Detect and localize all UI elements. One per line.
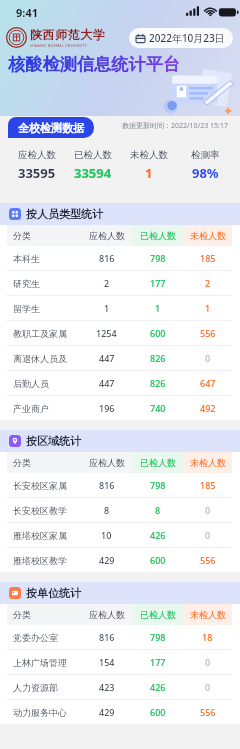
- staticText: 应检人数: [18, 149, 56, 161]
- button[interactable]: 本科生: [0, 246, 240, 270]
- staticText: 分类: [13, 230, 31, 241]
- staticText: 离退休人员及家属: [13, 353, 75, 364]
- staticText: 1: [104, 302, 110, 314]
- button[interactable]: 党委办公室: [0, 625, 240, 649]
- button[interactable]: 2022年10月23日: [129, 28, 233, 48]
- staticText: 33595: [18, 164, 56, 182]
- staticText: 按单位统计: [26, 586, 81, 600]
- staticText: 应检人数: [89, 609, 125, 620]
- staticText: 556: [200, 327, 216, 339]
- staticText: 长安校区教学区: [13, 505, 75, 516]
- staticText: 447: [99, 377, 115, 389]
- button[interactable]: 按单位统计: [0, 582, 240, 604]
- staticText: 556: [200, 706, 216, 718]
- button[interactable]: 动力服务中心: [0, 700, 240, 724]
- staticText: 18: [202, 631, 213, 643]
- staticText: 分类: [13, 609, 31, 620]
- staticText: 196: [99, 402, 115, 414]
- staticText: 447: [99, 352, 115, 364]
- button[interactable]: 教职工及家属: [0, 321, 240, 345]
- button[interactable]: 长安校区家属区: [0, 473, 240, 497]
- staticText: 动力服务中心: [13, 707, 67, 718]
- staticText: 8: [155, 504, 161, 516]
- staticText: 已检人数: [140, 457, 176, 468]
- staticText: 应检人数: [89, 457, 125, 468]
- staticText: 1: [205, 302, 211, 314]
- staticText: 816: [99, 479, 115, 491]
- staticText: 600: [150, 327, 166, 339]
- staticText: 740: [150, 402, 166, 414]
- staticText: 8: [104, 504, 110, 516]
- staticText: 600: [150, 706, 166, 718]
- staticText: 185: [200, 479, 216, 491]
- button[interactable]: 研究生: [0, 271, 240, 295]
- staticText: 检测率: [191, 149, 220, 161]
- staticText: 1254: [96, 327, 117, 339]
- staticText: 177: [150, 277, 166, 289]
- staticText: 429: [99, 706, 115, 718]
- staticText: 185: [200, 252, 216, 264]
- staticText: SHAANXI NORMAL UNIVERSITY: [30, 43, 88, 48]
- button[interactable]: 留学生: [0, 296, 240, 320]
- staticText: 教职工及家属: [13, 328, 67, 339]
- staticText: 雁塔校区教学区: [13, 555, 75, 566]
- button[interactable]: 离退休人员及家属: [0, 346, 240, 370]
- staticText: 未检人数: [190, 609, 226, 620]
- button[interactable]: 全校检测数据: [8, 117, 94, 138]
- staticText: 雁塔校区家属区: [13, 530, 75, 541]
- staticText: 已检人数: [74, 149, 112, 161]
- staticText: 应检人数: [89, 230, 125, 241]
- button[interactable]: 按人员类型统计: [0, 203, 240, 225]
- staticText: 816: [99, 252, 115, 264]
- button[interactable]: 按区域统计: [0, 430, 240, 452]
- button[interactable]: 产业商户: [0, 396, 240, 420]
- staticText: 600: [150, 554, 166, 566]
- staticText: 1: [155, 302, 161, 314]
- staticText: 0: [205, 529, 211, 541]
- staticText: 0: [205, 681, 211, 693]
- staticText: 核酸检测信息统计平台: [8, 54, 180, 75]
- staticText: 2: [104, 277, 110, 289]
- staticText: 分类: [13, 457, 31, 468]
- staticText: 人力资源部: [13, 682, 58, 693]
- staticText: 未检人数: [190, 230, 226, 241]
- staticText: 陕西师范大学: [30, 27, 106, 42]
- staticText: 426: [150, 529, 166, 541]
- button[interactable]: 后勤人员: [0, 371, 240, 395]
- staticText: 798: [150, 252, 166, 264]
- staticText: 本科生: [13, 253, 40, 264]
- staticText: 数据更新时间：2022/10/23 15:17: [122, 121, 228, 131]
- staticText: 798: [150, 479, 166, 491]
- staticText: 2: [205, 277, 211, 289]
- button[interactable]: 雁塔校区家属区: [0, 523, 240, 547]
- staticText: 0: [205, 504, 211, 516]
- staticText: 研究生: [13, 278, 40, 289]
- staticText: 826: [150, 352, 166, 364]
- staticText: 826: [150, 377, 166, 389]
- staticText: 798: [150, 631, 166, 643]
- staticText: 产业商户: [13, 403, 49, 414]
- staticText: 全校检测数据: [18, 121, 84, 135]
- staticText: 党委办公室: [13, 632, 58, 643]
- button[interactable]: 人力资源部: [0, 675, 240, 699]
- staticText: 留学生: [13, 303, 40, 314]
- staticText: 556: [200, 554, 216, 566]
- staticText: 2022年10月23日: [149, 31, 225, 45]
- staticText: 492: [200, 402, 216, 414]
- staticText: 未检人数: [130, 149, 168, 161]
- button[interactable]: 长安校区教学区: [0, 498, 240, 522]
- staticText: 647: [200, 377, 216, 389]
- staticText: 上林广场管理中心: [13, 657, 75, 668]
- staticText: 33594: [74, 164, 112, 182]
- staticText: 154: [99, 656, 115, 668]
- staticText: 0: [205, 656, 211, 668]
- button[interactable]: 雁塔校区教学区: [0, 548, 240, 572]
- staticText: 816: [99, 631, 115, 643]
- button[interactable]: 上林广场管理中心: [0, 650, 240, 674]
- staticText: 423: [99, 681, 115, 693]
- staticText: 未检人数: [190, 457, 226, 468]
- staticText: 已检人数: [140, 609, 176, 620]
- staticText: 后勤人员: [13, 378, 49, 389]
- staticText: 已检人数: [140, 230, 176, 241]
- staticText: 10: [101, 529, 112, 541]
